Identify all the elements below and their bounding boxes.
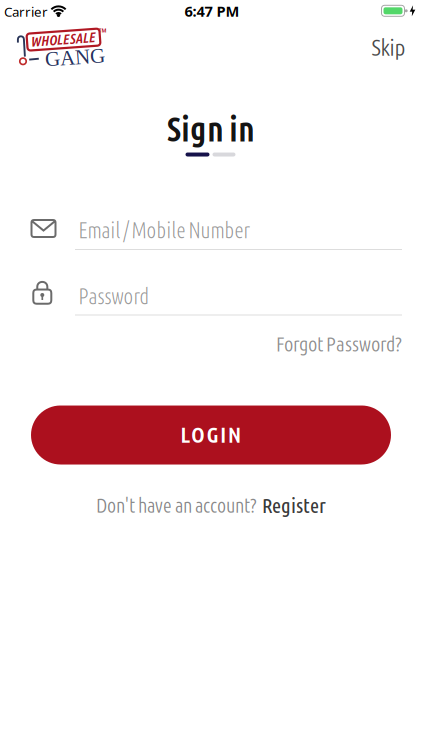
- staticText: Password: [78, 284, 149, 310]
- button[interactable]: Skip: [358, 31, 418, 65]
- staticText: Register: [262, 494, 326, 518]
- staticText: Carrier: [4, 3, 48, 20]
- staticText: 6:47 PM: [184, 1, 239, 21]
- staticText: LOGIN: [180, 421, 242, 449]
- staticText: Skip: [371, 34, 405, 62]
- staticText: WHOLESALE: [31, 31, 96, 48]
- staticText: GANG: [45, 46, 105, 69]
- button[interactable]: LOGIN: [31, 405, 391, 464]
- staticText: TM: [98, 27, 106, 34]
- staticText: Email / Mobile Number: [78, 218, 249, 244]
- staticText: Sign in: [167, 110, 255, 150]
- button[interactable]: Forgot Password?: [276, 332, 402, 357]
- staticText: Forgot Password?: [276, 332, 402, 357]
- staticText: Don't have an account?: [96, 494, 257, 518]
- button[interactable]: Register: [262, 494, 326, 518]
